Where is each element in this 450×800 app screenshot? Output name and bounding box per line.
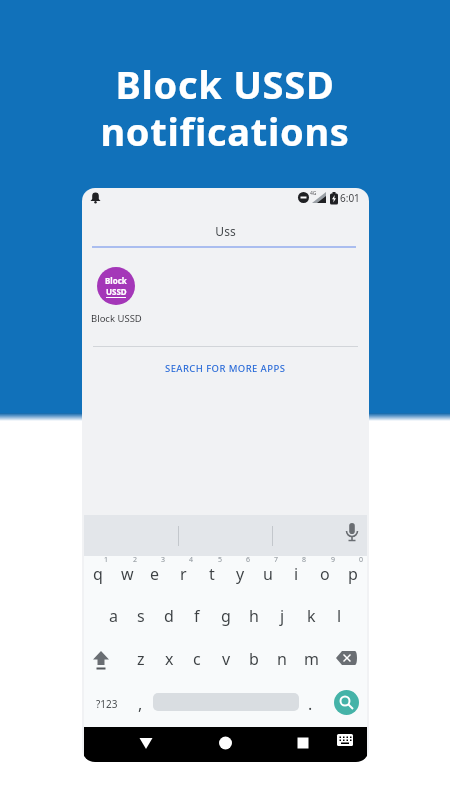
staticText: 6:01 (340, 191, 360, 205)
staticText: 4 (189, 555, 194, 565)
staticText: a (109, 605, 118, 627)
staticText: 2 (133, 555, 138, 565)
button[interactable]: v (212, 645, 240, 673)
staticText: 0 (359, 555, 364, 565)
staticText: b (249, 648, 259, 670)
staticText: e (150, 563, 160, 585)
staticText: h (249, 605, 259, 627)
button[interactable]: g (212, 602, 240, 630)
staticText: Block USSD (91, 312, 142, 325)
button[interactable] (84, 727, 367, 762)
staticText: m (304, 648, 319, 670)
staticText: SEARCH FOR MORE APPS (165, 362, 286, 375)
button[interactable]: SEARCH FOR MORE APPS (84, 362, 367, 375)
staticText: c (193, 648, 201, 670)
button[interactable]: y (226, 561, 254, 587)
staticText: 4G (310, 190, 317, 197)
staticText: s (137, 605, 145, 627)
staticText: k (307, 605, 316, 627)
staticText: Uss (84, 223, 367, 239)
staticText: u (263, 563, 273, 585)
staticText: ?123 (96, 697, 118, 711)
button[interactable]: . (300, 690, 320, 718)
staticText: y (236, 563, 245, 585)
staticText: 1 (104, 555, 109, 565)
staticText: r (180, 563, 187, 585)
staticText: j (280, 605, 285, 627)
staticText: Block USSD notifications (0, 58, 450, 157)
button[interactable]: u (254, 561, 282, 587)
button[interactable]: j (268, 602, 296, 630)
staticText: . (308, 693, 313, 715)
button[interactable]: r (169, 561, 197, 587)
staticText: w (121, 563, 134, 585)
button[interactable]: l (325, 602, 353, 630)
button[interactable]: e (141, 561, 169, 587)
button[interactable]: z (127, 645, 155, 673)
staticText: t (209, 563, 215, 585)
staticText: z (137, 648, 145, 670)
staticText: 8 (302, 555, 307, 565)
staticText: , (138, 693, 143, 715)
button[interactable]: c (183, 645, 211, 673)
button[interactable]: p (339, 561, 367, 587)
staticText: d (164, 605, 174, 627)
button[interactable] (334, 690, 359, 715)
button[interactable]: Block (84, 267, 148, 325)
button[interactable]: o (311, 561, 339, 587)
button[interactable]: q (84, 561, 112, 587)
button[interactable]: f (183, 602, 211, 630)
button[interactable]: m (297, 645, 325, 673)
staticText: f (194, 605, 200, 627)
staticText: 5 (218, 555, 223, 565)
button[interactable]: k (297, 602, 325, 630)
staticText: q (93, 563, 103, 585)
button[interactable]: ?123 (92, 690, 122, 718)
button[interactable]: t (198, 561, 226, 587)
button[interactable]: w (113, 561, 141, 587)
staticText: 6 (246, 555, 251, 565)
staticText: i (294, 563, 299, 585)
staticText: x (165, 648, 174, 670)
staticText: n (277, 648, 287, 670)
staticText: 3 (161, 555, 166, 565)
button[interactable]: h (240, 602, 268, 630)
button[interactable]: d (155, 602, 183, 630)
staticText: USSD (106, 286, 127, 297)
staticText: l (337, 605, 342, 627)
staticText: p (348, 563, 358, 585)
staticText: 9 (331, 555, 336, 565)
staticText: v (222, 648, 231, 670)
staticText: o (320, 563, 330, 585)
button[interactable]: x (155, 645, 183, 673)
button[interactable]: i (282, 561, 310, 587)
staticText: 7 (274, 555, 279, 565)
button[interactable]: s (127, 602, 155, 630)
button[interactable]: , (128, 690, 152, 718)
button[interactable]: b (240, 645, 268, 673)
staticText: Block (105, 275, 127, 286)
button[interactable]: a (99, 602, 127, 630)
staticText: g (221, 605, 231, 627)
button[interactable]: n (268, 645, 296, 673)
